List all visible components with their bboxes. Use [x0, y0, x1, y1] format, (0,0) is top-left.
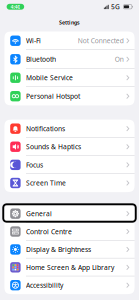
button[interactable]: Home Screen & App Library	[4, 258, 135, 276]
staticText: Control Centre	[26, 227, 72, 236]
staticText: General	[26, 209, 52, 218]
button[interactable]: Control Centre	[4, 223, 135, 240]
staticText: Wi-Fi	[26, 36, 41, 45]
button[interactable]: Bluetooth	[4, 50, 135, 68]
staticText: Display & Brightness	[26, 245, 91, 254]
staticText: Screen Time	[26, 179, 66, 187]
button[interactable]: Personal Hotspot	[4, 87, 135, 105]
staticText: Mobile Service	[26, 73, 73, 82]
staticText: Notifications	[26, 124, 65, 133]
button[interactable]: Sounds & Haptics	[4, 138, 135, 156]
staticText: Sounds & Haptics	[26, 142, 81, 151]
button[interactable]: Screen Time	[4, 174, 135, 192]
button[interactable]: Wi-Fi	[4, 31, 135, 50]
staticText: Settings	[59, 19, 80, 26]
button[interactable]: Focus	[4, 156, 135, 174]
staticText: On	[115, 55, 124, 64]
button[interactable]: Accessibility	[4, 276, 135, 294]
button[interactable]: General	[4, 205, 135, 223]
staticText: Personal Hotspot	[26, 92, 80, 101]
staticText: Accessibility	[26, 281, 63, 290]
button[interactable]: Display & Brightness	[4, 240, 135, 258]
staticText: Not Connected	[78, 36, 124, 45]
button[interactable]: Notifications	[4, 120, 135, 138]
staticText: Focus	[26, 160, 43, 169]
staticText: Home Screen & App Library	[26, 263, 114, 272]
button[interactable]: Mobile Service	[4, 68, 135, 87]
staticText: Bluetooth	[26, 55, 56, 64]
staticText: 5G	[111, 2, 120, 11]
staticText: 4:40	[10, 3, 20, 10]
